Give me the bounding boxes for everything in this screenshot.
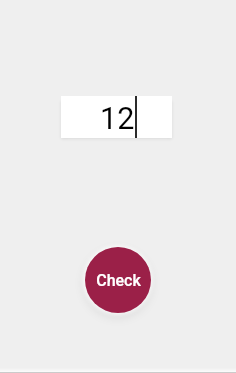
button[interactable]: Check xyxy=(85,247,151,313)
button[interactable]: Number entry field xyxy=(61,96,172,138)
staticText: 12 xyxy=(100,101,135,137)
staticText: Check xyxy=(96,271,141,290)
